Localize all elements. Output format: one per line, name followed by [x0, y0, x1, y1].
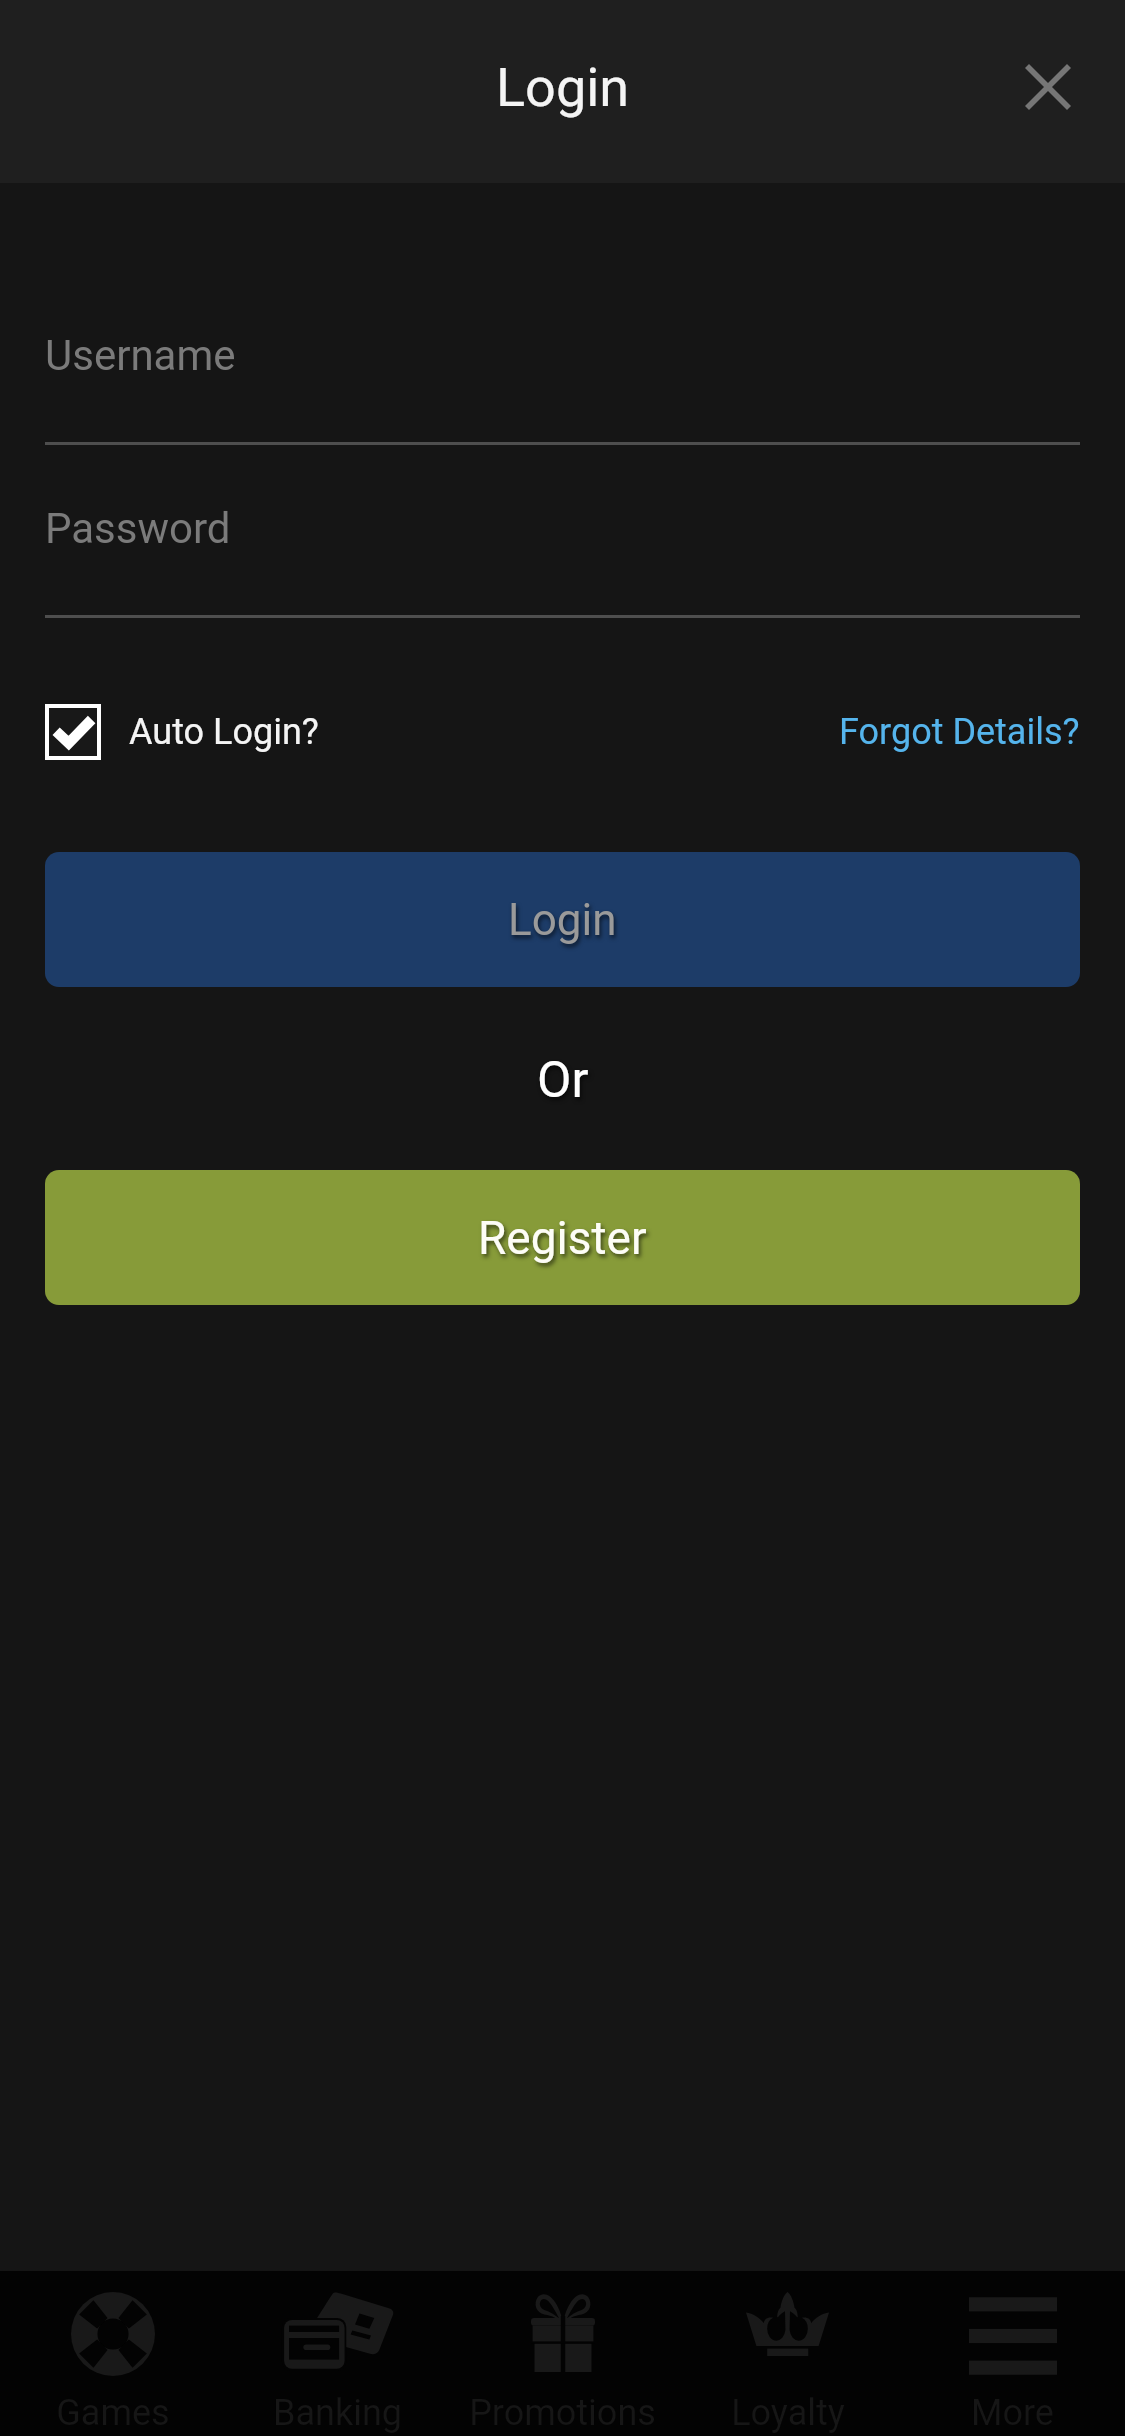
button[interactable]: Loyalty	[675, 2271, 900, 2436]
button[interactable]: Games	[0, 2271, 225, 2436]
staticText: Loyalty	[731, 2392, 845, 2434]
button[interactable]: Login	[45, 852, 1080, 987]
button[interactable]: Promotions	[450, 2271, 675, 2436]
button[interactable]: More	[900, 2271, 1125, 2436]
staticText: Register	[478, 1211, 647, 1265]
staticText: Auto Login?	[129, 711, 319, 753]
staticText: Login	[508, 894, 617, 946]
staticText: Banking	[273, 2392, 402, 2434]
button[interactable]: Auto Login?	[45, 704, 319, 760]
staticText: Or	[537, 1051, 589, 1110]
staticText: Password	[45, 504, 231, 553]
staticText: Login	[496, 56, 630, 119]
staticText: Username	[45, 331, 236, 380]
staticText: Forgot Details?	[839, 711, 1080, 753]
button[interactable]: Banking	[225, 2271, 450, 2436]
button[interactable]: Close	[992, 31, 1104, 143]
button[interactable]: Register	[45, 1170, 1080, 1305]
staticText: More	[971, 2392, 1054, 2434]
staticText: Promotions	[469, 2392, 656, 2434]
button[interactable]: Forgot Details?	[839, 711, 1080, 753]
staticText: Games	[56, 2392, 170, 2434]
